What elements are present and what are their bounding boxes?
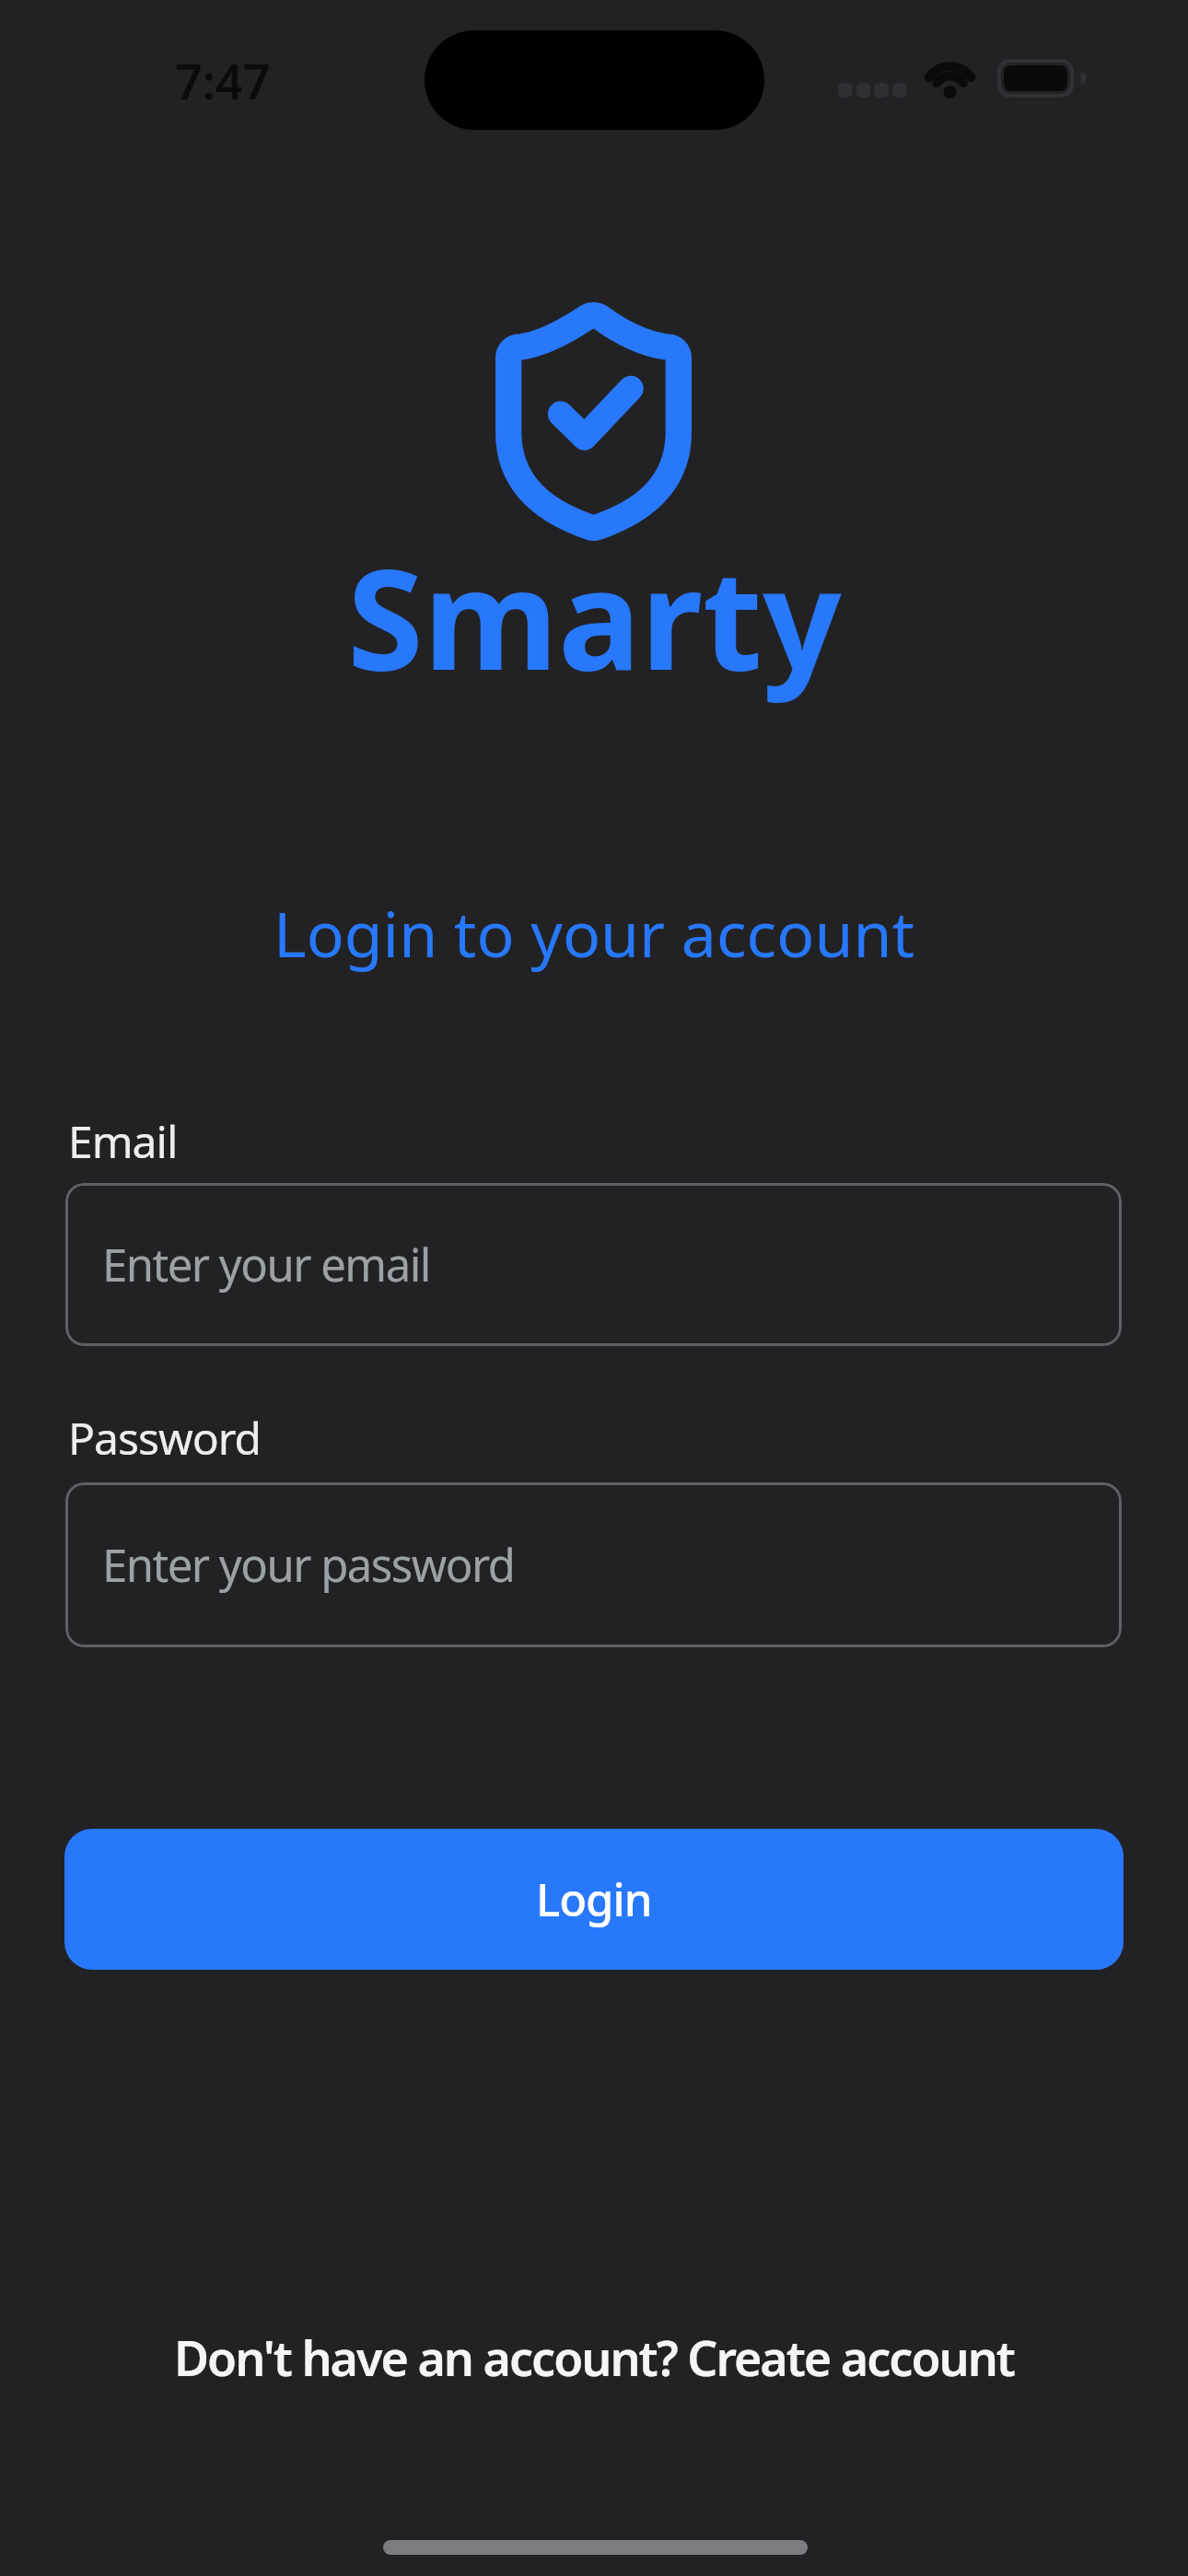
- staticText: Login to your account: [274, 890, 914, 976]
- button[interactable]: Don't have an account? Create account: [0, 2324, 1188, 2390]
- staticText: Enter your password: [102, 1534, 515, 1596]
- staticText: Password: [68, 1408, 262, 1468]
- staticText: Smarty: [347, 522, 842, 710]
- staticText: Don't have an account? Create account: [174, 2324, 1014, 2390]
- staticText: Login: [536, 1868, 652, 1930]
- button[interactable]: Enter your password: [65, 1482, 1122, 1647]
- staticText: 7:47: [175, 48, 271, 113]
- button[interactable]: Enter your email: [65, 1183, 1122, 1346]
- staticText: Enter your email: [102, 1234, 430, 1295]
- staticText: Email: [68, 1111, 178, 1171]
- button[interactable]: Login: [64, 1829, 1124, 1970]
